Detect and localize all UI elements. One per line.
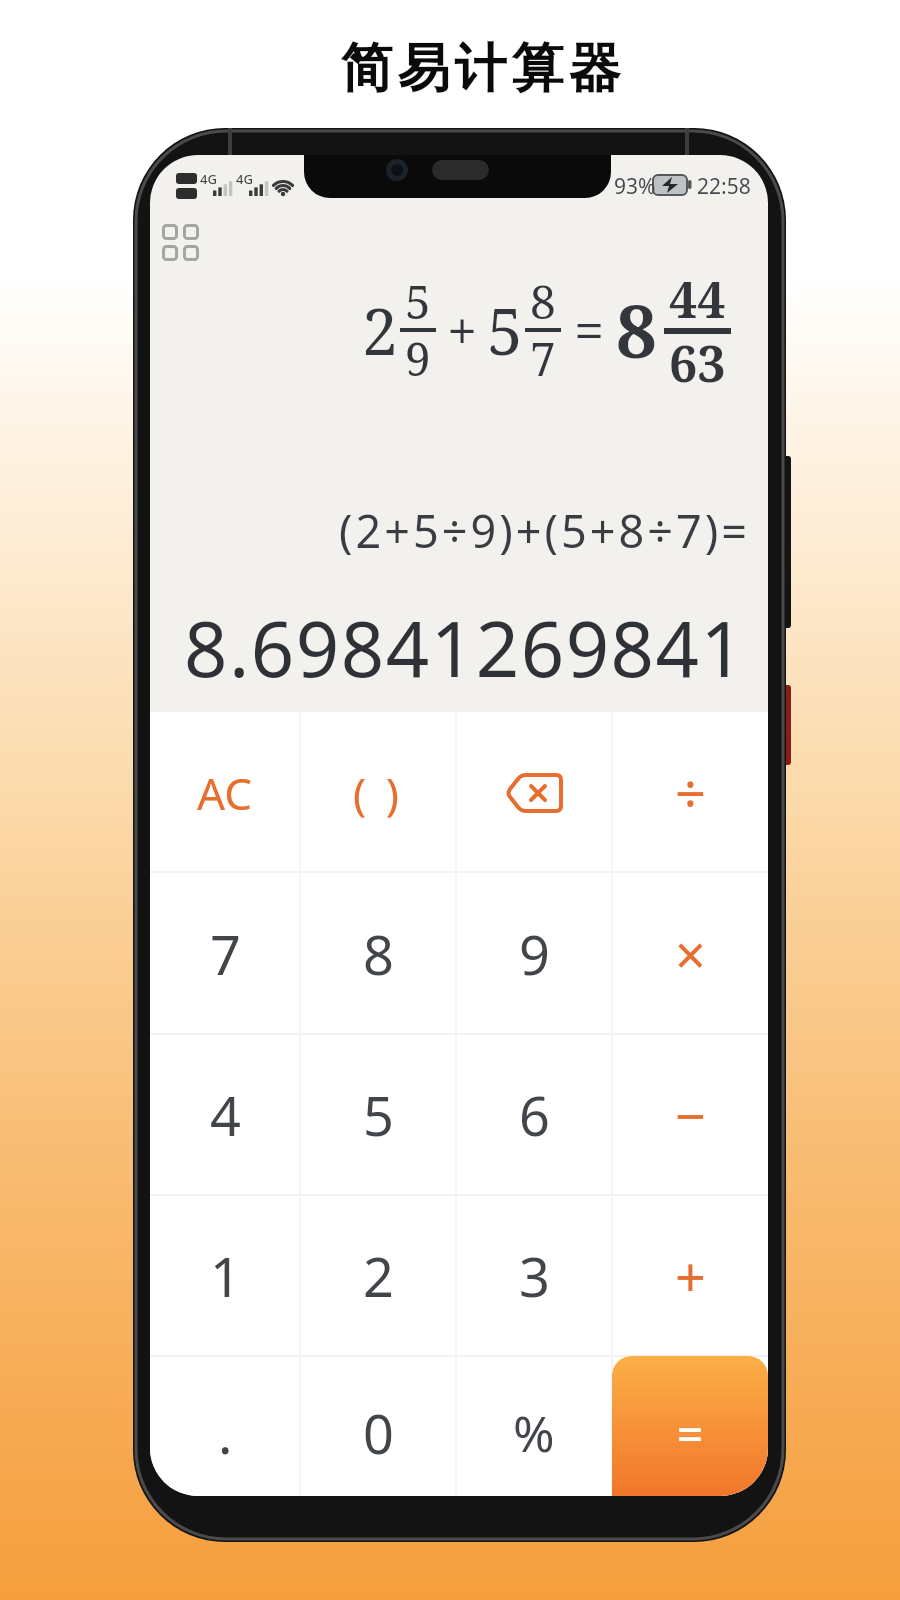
staticText: (2+5÷9)+(5+8÷7)= bbox=[339, 500, 750, 561]
staticText: . bbox=[218, 1396, 233, 1470]
staticText: − bbox=[675, 1078, 706, 1152]
staticText: 7 bbox=[530, 327, 556, 390]
button[interactable]: 3 bbox=[456, 1195, 612, 1356]
staticText: 5 bbox=[487, 287, 523, 374]
button[interactable]: 1 bbox=[150, 1195, 300, 1356]
staticText: ÷ bbox=[675, 756, 706, 830]
button[interactable]: + bbox=[612, 1195, 768, 1356]
staticText: 4G bbox=[200, 170, 217, 188]
button[interactable]: × bbox=[612, 873, 768, 1034]
staticText: % bbox=[513, 1399, 555, 1467]
staticText: 9 bbox=[519, 917, 550, 991]
staticText: 9 bbox=[405, 327, 431, 390]
staticText: 93% bbox=[614, 172, 656, 201]
staticText: 5 bbox=[363, 1078, 394, 1152]
staticText: 3 bbox=[519, 1239, 550, 1313]
staticText: 7 bbox=[210, 917, 241, 991]
button[interactable]: 2 bbox=[300, 1195, 456, 1356]
staticText: 63 bbox=[669, 329, 726, 395]
staticText: 8.69841269841 bbox=[184, 596, 746, 700]
staticText: 22:58 bbox=[697, 172, 751, 201]
staticText: 简易计算器 bbox=[338, 36, 623, 102]
staticText: ( ) bbox=[353, 763, 403, 823]
button[interactable]: 9 bbox=[456, 873, 612, 1034]
button[interactable]: % bbox=[456, 1356, 612, 1496]
staticText: 4G bbox=[236, 170, 253, 188]
staticText: 44 bbox=[669, 265, 726, 333]
staticText: 6 bbox=[519, 1078, 550, 1152]
staticText: = bbox=[677, 1402, 704, 1465]
button[interactable]: ÷ bbox=[612, 712, 768, 873]
staticText: 8 bbox=[616, 281, 657, 379]
staticText: + bbox=[447, 293, 478, 367]
staticText: 2 bbox=[362, 287, 398, 374]
staticText: 2 bbox=[363, 1239, 394, 1313]
staticText: 8 bbox=[363, 917, 394, 991]
button[interactable]: ( ) bbox=[300, 712, 456, 873]
button[interactable]: − bbox=[612, 1034, 768, 1195]
button[interactable]: 8 bbox=[300, 873, 456, 1034]
button[interactable]: 4 bbox=[150, 1034, 300, 1195]
staticText: × bbox=[675, 917, 706, 991]
button[interactable]: = bbox=[612, 1356, 768, 1496]
staticText: 8 bbox=[530, 270, 556, 333]
staticText: AC bbox=[197, 763, 253, 823]
button[interactable]: 6 bbox=[456, 1034, 612, 1195]
button[interactable]: 5 bbox=[300, 1034, 456, 1195]
staticText: 0 bbox=[363, 1396, 394, 1470]
staticText: + bbox=[675, 1239, 706, 1313]
button[interactable]: AC bbox=[150, 712, 300, 873]
staticText: 1 bbox=[210, 1239, 241, 1313]
button[interactable] bbox=[162, 224, 198, 260]
button[interactable]: 0 bbox=[300, 1356, 456, 1496]
staticText: 4 bbox=[210, 1078, 241, 1152]
button[interactable]: 7 bbox=[150, 873, 300, 1034]
button[interactable]: . bbox=[150, 1356, 300, 1496]
staticText: 5 bbox=[405, 270, 431, 333]
button[interactable] bbox=[456, 712, 612, 873]
staticText: = bbox=[574, 293, 605, 367]
